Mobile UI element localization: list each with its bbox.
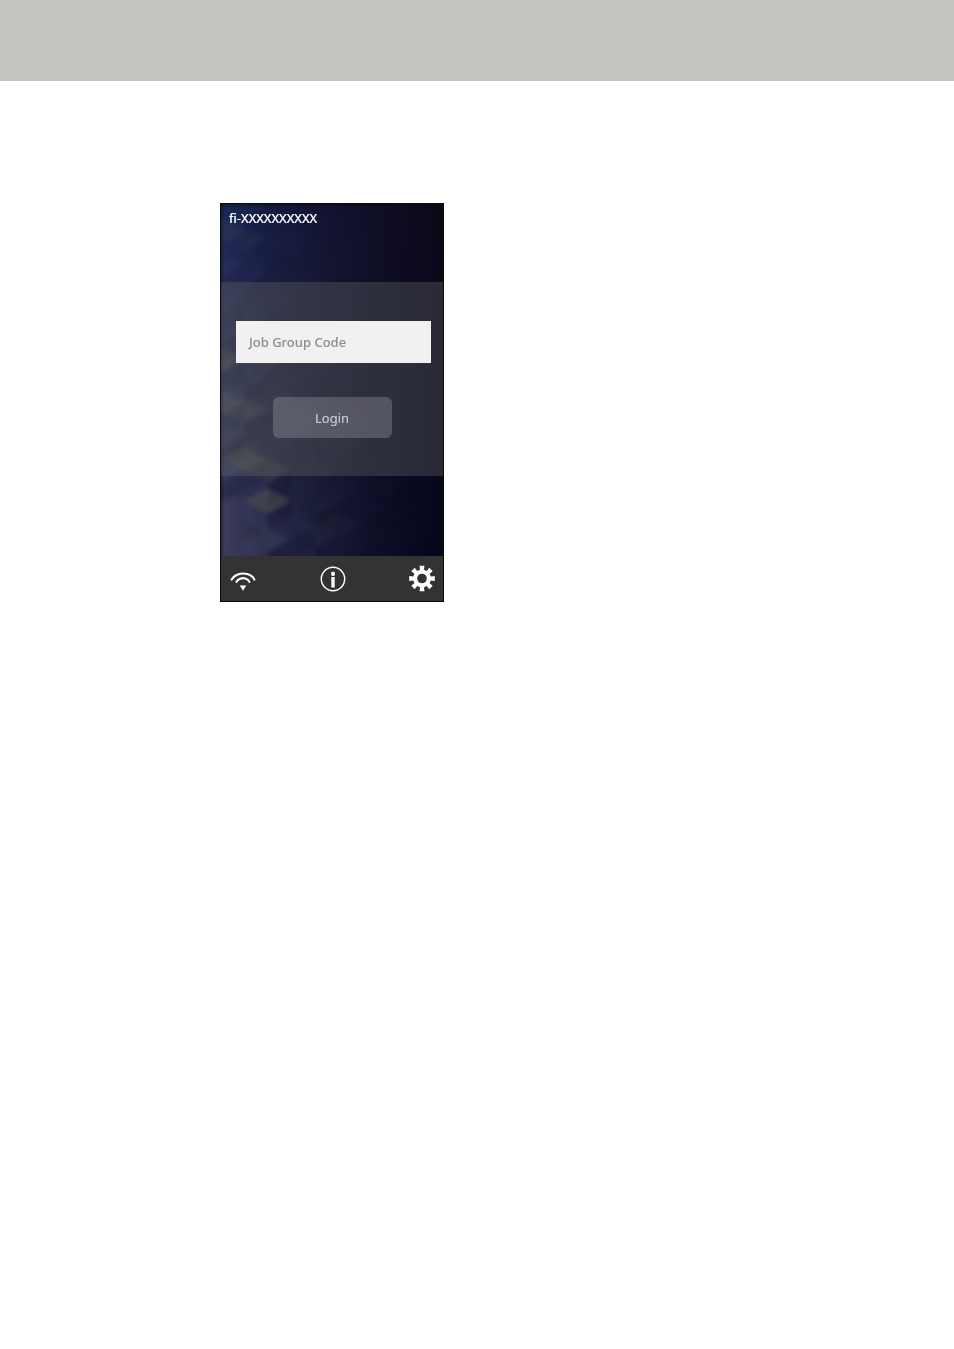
button[interactable]: Wi-Fi bbox=[230, 556, 256, 601]
button[interactable]: Login bbox=[273, 397, 392, 438]
button[interactable]: Job Group Code bbox=[236, 321, 431, 363]
button[interactable]: Information bbox=[320, 556, 346, 601]
staticText: Job Group Code bbox=[249, 333, 347, 351]
button[interactable]: Settings bbox=[409, 556, 435, 601]
staticText: fi-XXXXXXXXXX bbox=[229, 209, 318, 227]
staticText: Login bbox=[315, 409, 350, 427]
